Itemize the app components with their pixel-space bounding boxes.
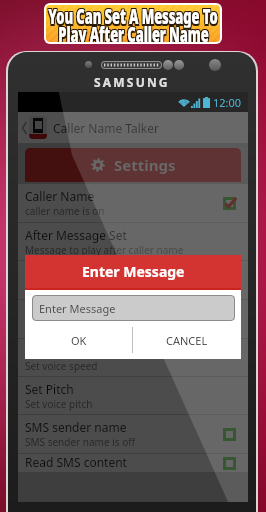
- button[interactable]: Set Pitch: [18, 377, 248, 415]
- staticText: Set Volume: [25, 304, 89, 320]
- staticText: Play After Caller Name: [59, 19, 210, 42]
- button[interactable]: CANCEL: [133, 321, 241, 359]
- staticText: Set Language: [25, 265, 102, 281]
- staticText: SAMSUNG: [94, 74, 170, 90]
- staticText: Caller Name Talker: [53, 120, 159, 136]
- staticText: Play After Caller Name: [57, 20, 208, 42]
- staticText: You Can Set A Message To: [47, 5, 217, 29]
- staticText: SMS sender name: [25, 419, 127, 435]
- staticText: Set voice speed: [25, 359, 98, 373]
- staticText: Play After Caller Name: [58, 19, 209, 42]
- staticText: Set Pitch: [25, 381, 74, 397]
- staticText: You Can Set A Message To: [49, 5, 219, 29]
- button[interactable]: Read SMS content: [18, 454, 248, 472]
- staticText: Play After Caller Name: [57, 22, 208, 42]
- staticText: You Can Set A Message To: [49, 5, 219, 28]
- staticText: Set voice pitch: [25, 397, 93, 411]
- staticText: SMS sender name is off: [25, 435, 136, 449]
- button[interactable]: Settings: [25, 148, 241, 182]
- staticText: Read SMS content: [25, 454, 127, 470]
- button[interactable]: Set Speed: [18, 339, 248, 377]
- staticText: Enter Message: [39, 301, 116, 316]
- staticText: You Can Set A Message To: [48, 5, 218, 26]
- staticText: Caller Name: [25, 188, 95, 204]
- staticText: OK: [71, 333, 87, 348]
- button[interactable]: After Message Set: [18, 223, 248, 261]
- button[interactable]: OK: [25, 321, 132, 359]
- staticText: After Message Set: [25, 227, 127, 243]
- staticText: CANCEL: [166, 333, 208, 348]
- staticText: Play After Caller Name: [58, 20, 209, 42]
- button[interactable]: SMS sender name: [18, 415, 248, 454]
- button[interactable]: Caller Name: [18, 184, 248, 223]
- staticText: You Can Set A Message To: [47, 5, 217, 26]
- staticText: Message to play after caller name: [25, 243, 184, 257]
- staticText: Play After Caller Name: [57, 19, 208, 42]
- staticText: Set voice volume: [25, 320, 104, 334]
- staticText: caller name is on: [25, 204, 105, 218]
- staticText: Play After Caller Name: [58, 22, 209, 42]
- staticText: You Can Set A Message To: [48, 5, 218, 28]
- staticText: Play After Caller Name: [59, 20, 210, 42]
- staticText: Play After Caller Name: [59, 22, 210, 42]
- button[interactable]: Set Language: [18, 261, 248, 300]
- staticText: You Can Set A Message To: [48, 5, 218, 29]
- staticText: 12:00: [213, 95, 242, 110]
- staticText: You Can Set A Message To: [47, 5, 217, 28]
- staticText: Enter Message: [82, 262, 185, 281]
- button[interactable]: Navigate up: [18, 112, 49, 143]
- staticText: Settings: [114, 155, 176, 175]
- staticText: Set voice language: [25, 281, 114, 295]
- button[interactable]: Enter Message: [32, 295, 235, 321]
- button[interactable]: Set Volume: [18, 300, 248, 339]
- staticText: Set Speed: [25, 343, 81, 359]
- staticText: You Can Set A Message To: [49, 5, 219, 26]
